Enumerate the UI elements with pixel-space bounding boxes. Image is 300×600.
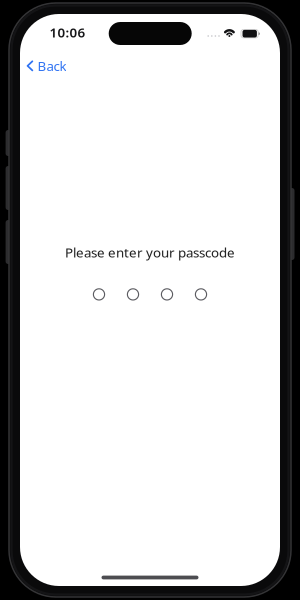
staticText: Please enter your passcode [65, 243, 235, 261]
staticText: Back [37, 57, 66, 75]
staticText: 10:06 [49, 23, 85, 41]
button[interactable]: Back [20, 51, 71, 81]
